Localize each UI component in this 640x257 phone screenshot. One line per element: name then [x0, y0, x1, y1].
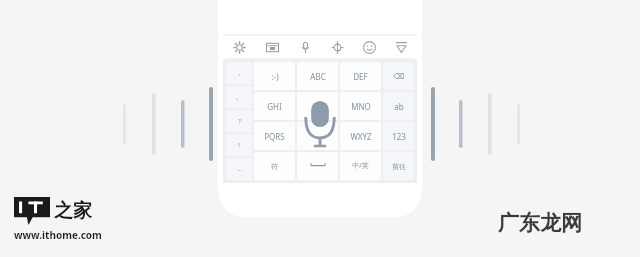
button[interactable]: 中/英 — [340, 152, 381, 180]
button[interactable]: ! — [226, 134, 252, 156]
staticText: ， — [236, 69, 242, 77]
button[interactable]: :-) — [254, 62, 295, 90]
button[interactable] — [297, 122, 338, 150]
staticText: ? — [238, 117, 241, 125]
button[interactable]: Hide keyboard — [385, 35, 417, 59]
staticText: GHI — [267, 101, 282, 112]
button[interactable]: ⌫ — [383, 62, 414, 90]
button[interactable]: ? — [226, 110, 252, 132]
button[interactable]: GHI — [254, 92, 295, 120]
staticText: PQRS — [264, 131, 285, 142]
button[interactable]: ab — [383, 92, 414, 120]
staticText: 中/英 — [352, 161, 369, 171]
button[interactable]: MNO — [340, 92, 381, 120]
staticText: WXYZ — [350, 131, 372, 142]
staticText: 前往 — [392, 162, 406, 171]
button[interactable]: Voice input — [289, 35, 321, 59]
button[interactable] — [297, 92, 338, 120]
button[interactable]: Themes — [256, 35, 289, 59]
staticText: ⌫ — [393, 72, 405, 81]
staticText: 之家 — [54, 199, 92, 223]
staticText: 123 — [392, 131, 406, 142]
button[interactable]: Voice input — [303, 99, 337, 149]
button[interactable]: Emoji — [353, 35, 385, 59]
staticText: ABC — [310, 71, 326, 82]
staticText: … — [237, 165, 242, 173]
staticText: MNO — [351, 101, 371, 112]
button[interactable]: 123 — [383, 122, 414, 150]
staticText: 符 — [271, 162, 278, 171]
staticText: ab — [394, 101, 404, 112]
staticText: DEF — [353, 71, 368, 82]
button[interactable]: 前往 — [383, 152, 414, 180]
button[interactable]: ABC — [297, 62, 338, 90]
staticText: www.ithome.com — [14, 228, 102, 242]
button[interactable]: Handwriting — [321, 35, 353, 59]
staticText: :-) — [271, 71, 279, 82]
button[interactable]: WXYZ — [340, 122, 381, 150]
button[interactable] — [297, 152, 338, 180]
staticText: 。 — [236, 93, 242, 101]
staticText: ! — [238, 141, 240, 149]
staticText: 广东龙网 — [498, 210, 582, 236]
button[interactable]: … — [226, 158, 252, 180]
button[interactable]: PQRS — [254, 122, 295, 150]
button[interactable]: 符 — [254, 152, 295, 180]
button[interactable]: DEF — [340, 62, 381, 90]
button[interactable]: Settings — [223, 35, 256, 59]
